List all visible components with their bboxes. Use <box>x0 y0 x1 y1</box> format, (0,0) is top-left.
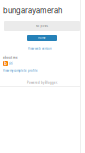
button[interactable]: View my complete profile <box>3 69 38 73</box>
staticText: No posts. <box>35 24 48 28</box>
staticText: View web version <box>28 47 52 51</box>
staticText: bungarayamerah <box>3 6 62 15</box>
button[interactable]: Home <box>27 35 57 41</box>
staticText: siti <box>9 62 13 65</box>
staticText: b <box>4 60 7 67</box>
staticText: Home <box>38 36 46 40</box>
staticText: about me <box>3 56 18 60</box>
staticText: Powered by Blogger. <box>27 81 58 85</box>
staticText: View my complete profile <box>3 69 38 73</box>
button[interactable]: View web version <box>28 47 52 51</box>
button[interactable]: b <box>3 61 13 66</box>
